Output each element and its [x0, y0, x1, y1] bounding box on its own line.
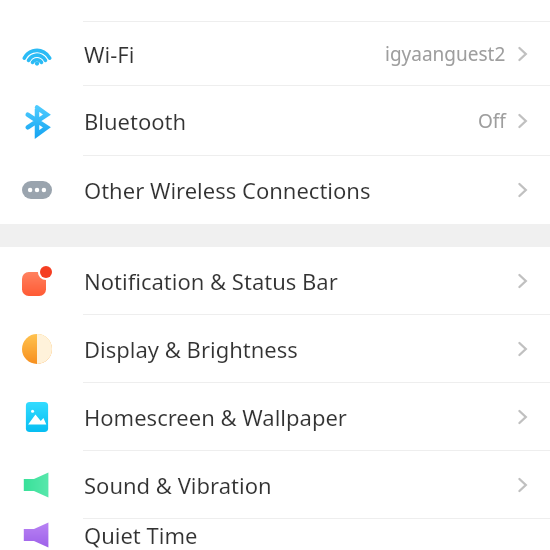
- button[interactable]: Display & Brightness: [0, 315, 550, 382]
- button[interactable]: Notification & Status Bar: [0, 247, 550, 314]
- staticText: igyaanguest2: [385, 41, 506, 67]
- button[interactable]: Bluetooth: [0, 86, 550, 155]
- button[interactable]: Other Wireless Connections: [0, 156, 550, 224]
- staticText: Notification & Status Bar: [84, 266, 338, 296]
- button[interactable]: Quiet Time: [0, 519, 550, 550]
- staticText: Quiet Time: [84, 520, 198, 550]
- button[interactable]: Wi-Fi: [0, 22, 550, 85]
- staticText: Other Wireless Connections: [84, 175, 371, 205]
- staticText: Bluetooth: [84, 106, 187, 136]
- staticText: Off: [478, 108, 506, 134]
- button[interactable]: Sound & Vibration: [0, 451, 550, 518]
- staticText: Wi-Fi: [84, 39, 135, 69]
- staticText: Homescreen & Wallpaper: [84, 402, 347, 432]
- button[interactable]: Homescreen & Wallpaper: [0, 383, 550, 450]
- staticText: Sound & Vibration: [84, 470, 272, 500]
- staticText: Display & Brightness: [84, 334, 298, 364]
